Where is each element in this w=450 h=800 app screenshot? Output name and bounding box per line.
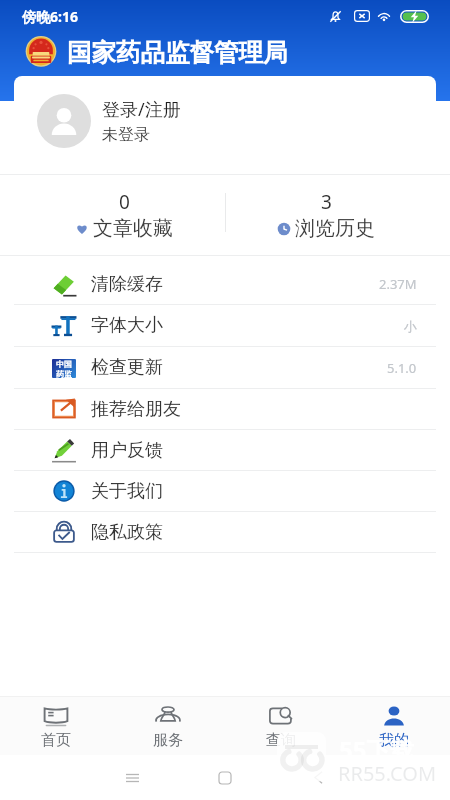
staticText: 清除缓存	[91, 273, 163, 296]
button[interactable]: 0	[23, 175, 225, 255]
button[interactable]: 用户反馈	[0, 430, 450, 470]
staticText: 傍晚6:16	[22, 7, 78, 26]
staticText: 字体大小	[91, 314, 163, 337]
button[interactable]: 服务	[112, 697, 224, 755]
staticText: 我的	[379, 731, 409, 750]
staticText: 关于我们	[91, 480, 163, 503]
staticText: 药监	[56, 369, 72, 378]
staticText: 隐私政策	[91, 521, 163, 544]
staticText: 查询	[266, 731, 296, 750]
staticText: RR55.COM	[338, 760, 437, 787]
staticText: 登录/注册	[102, 97, 181, 122]
staticText: 3	[321, 189, 332, 215]
button[interactable]: 中国	[0, 347, 450, 388]
staticText: 小	[404, 318, 417, 334]
staticText: 中国	[56, 359, 72, 369]
button[interactable]: 关于我们	[0, 471, 450, 511]
staticText: 0	[119, 189, 130, 215]
staticText: 国家药品监督管理局	[67, 37, 288, 68]
staticText: 2.37M	[379, 275, 417, 293]
staticText: 检查更新	[91, 356, 163, 379]
button[interactable]: 3	[225, 175, 427, 255]
button[interactable]: 我的	[337, 697, 450, 755]
button[interactable]: Recent apps	[108, 755, 156, 800]
button[interactable]: 首页	[0, 697, 112, 755]
staticText: 浏览历史	[295, 216, 375, 241]
button[interactable]: 隐私政策	[0, 512, 450, 552]
button[interactable]: 字体大小	[0, 305, 450, 346]
staticText: 未登录	[102, 125, 150, 145]
staticText: 首页	[41, 731, 71, 750]
button[interactable]: 推荐给朋友	[0, 389, 450, 429]
button[interactable]: 查询	[224, 697, 337, 755]
staticText: 服务	[153, 731, 183, 750]
button[interactable]: Home	[201, 755, 249, 800]
staticText: 5.1.0	[387, 359, 417, 377]
staticText: 55下载	[339, 733, 415, 766]
staticText: 文章收藏	[93, 216, 173, 241]
button[interactable]: 清除缓存	[0, 264, 450, 304]
staticText: 推荐给朋友	[91, 398, 181, 421]
staticText: 用户反馈	[91, 439, 163, 462]
button[interactable]: Back	[294, 755, 342, 800]
button[interactable]: 登录/注册	[0, 93, 450, 148]
